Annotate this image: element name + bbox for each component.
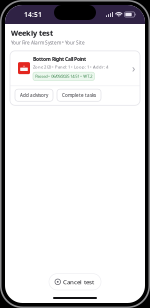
staticText: Cancel test (63, 278, 94, 286)
staticText: Complete tasks (62, 92, 96, 98)
staticText: Add advisory (20, 92, 48, 98)
button[interactable]: Add advisory (15, 89, 53, 101)
staticText: Bottom Right Call Point (33, 56, 86, 62)
staticText: Your Fire Alarm System • Your Site (11, 39, 85, 46)
button[interactable]: Complete tasks (57, 89, 101, 101)
staticText: 14:51 (24, 10, 42, 19)
button[interactable]: Bottom Right Call Point (10, 51, 140, 85)
staticText: Zone 2 (2) • Panel: 1 • Loop: 1 • Addr: … (33, 64, 108, 70)
staticText: Passed • 06/09/2025 14:51 • WT-2 (35, 74, 92, 79)
button[interactable]: Cancel test (49, 274, 101, 290)
staticText: › (132, 61, 135, 75)
staticText: Weekly test (11, 28, 53, 38)
